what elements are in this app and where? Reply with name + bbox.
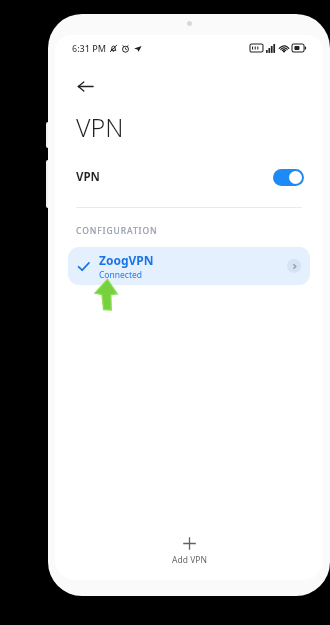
button[interactable]: VPN on [273, 169, 304, 186]
staticText: CONFIGURATION [76, 225, 158, 237]
button[interactable]: VPN [55, 160, 323, 194]
staticText: Add VPN [172, 554, 207, 566]
staticText: VPN [76, 110, 124, 144]
staticText: ZoogVPN [99, 252, 154, 268]
button[interactable]: ZoogVPN [68, 247, 310, 285]
button[interactable]: VPN settings [287, 259, 301, 273]
button[interactable]: Back [68, 69, 102, 103]
button[interactable]: Add VPN [55, 536, 323, 566]
staticText: Connected [99, 269, 142, 281]
staticText: 6:31 PM [72, 42, 106, 54]
staticText: VPN [76, 169, 100, 185]
